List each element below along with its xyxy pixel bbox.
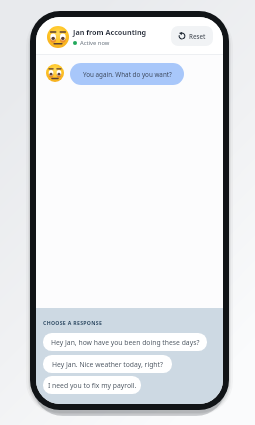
- staticText: Hey Jan, how have you been doing these d…: [51, 338, 200, 347]
- staticText: Reset: [189, 32, 206, 40]
- button[interactable]: Hey Jan. Nice weather today, right?: [43, 355, 172, 373]
- staticText: I need you to fix my payroll.: [48, 381, 137, 390]
- staticText: Jan from Accounting: [73, 27, 147, 37]
- button[interactable]: I need you to fix my payroll.: [43, 376, 141, 394]
- staticText: Hey Jan. Nice weather today, right?: [52, 360, 163, 369]
- staticText: Active now: [80, 39, 110, 47]
- button[interactable]: Reset: [171, 26, 213, 46]
- button[interactable]: Hey Jan, how have you been doing these d…: [43, 333, 207, 351]
- staticText: You again. What do you want?: [83, 70, 172, 79]
- staticText: CHOOSE A RESPONSE: [43, 319, 103, 326]
